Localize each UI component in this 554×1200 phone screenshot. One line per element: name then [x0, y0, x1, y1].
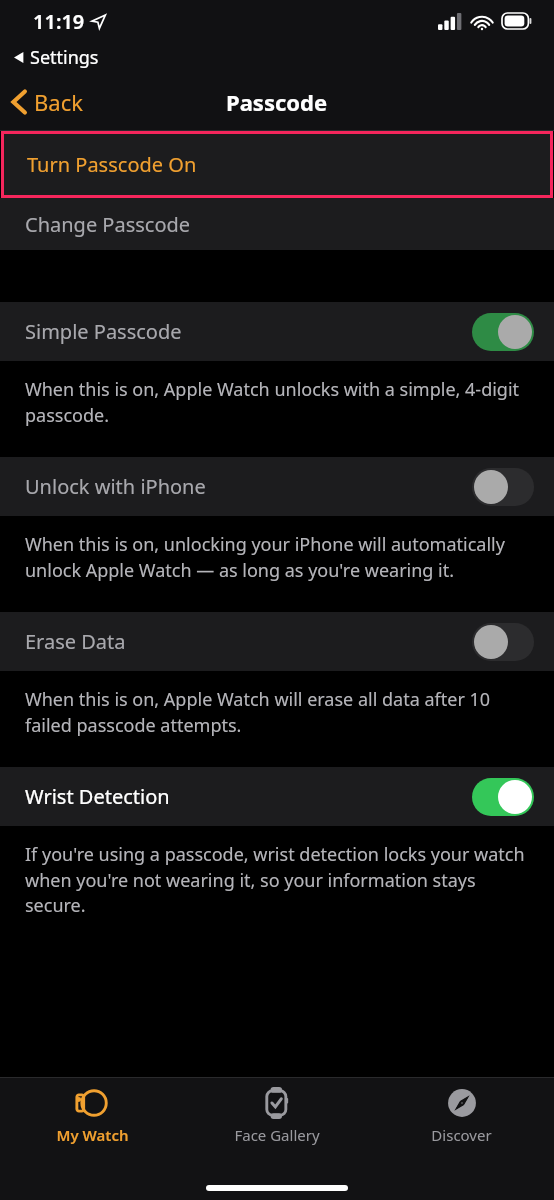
staticText: Wrist Detection: [25, 783, 170, 810]
button[interactable]: Settings: [0, 42, 554, 72]
button[interactable]: My Watch: [0, 1078, 184, 1154]
button[interactable]: Turn Passcode On: [4, 134, 550, 195]
staticText: Simple Passcode: [25, 318, 182, 345]
button[interactable]: Back: [0, 74, 95, 130]
button[interactable]: Wrist Detection: [0, 767, 554, 826]
staticText: Passcode: [226, 87, 328, 117]
staticText: Turn Passcode On: [27, 151, 197, 178]
staticText: Settings: [30, 45, 99, 70]
staticText: Unlock with iPhone: [25, 473, 206, 500]
other: My Watch: [75, 1086, 109, 1120]
button[interactable]: Simple Passcode: [0, 302, 554, 361]
button[interactable]: Unlock with iPhone: [0, 457, 554, 516]
staticText: Back: [34, 87, 83, 117]
staticText: Change Passcode: [25, 211, 191, 238]
staticText: My Watch: [56, 1125, 129, 1145]
staticText: If you're using a passcode, wrist detect…: [25, 842, 528, 917]
button[interactable]: Toggle: [472, 468, 534, 506]
staticText: When this is on, unlocking your iPhone w…: [25, 532, 528, 582]
staticText: Erase Data: [25, 628, 126, 655]
staticText: When this is on, Apple Watch unlocks wit…: [25, 377, 528, 427]
button[interactable]: Discover: [369, 1078, 554, 1154]
button[interactable]: Toggle: [472, 623, 534, 661]
staticText: Discover: [431, 1125, 492, 1145]
other: Discover: [445, 1086, 479, 1120]
button[interactable]: Face Gallery: [184, 1078, 369, 1154]
button[interactable]: Change Passcode: [0, 198, 554, 250]
staticText: When this is on, Apple Watch will erase …: [25, 687, 528, 737]
staticText: 11:19: [33, 8, 85, 35]
staticText: Face Gallery: [234, 1125, 320, 1145]
button[interactable]: Toggle: [472, 778, 534, 816]
button[interactable]: Erase Data: [0, 612, 554, 671]
button[interactable]: Toggle: [472, 313, 534, 351]
other: Face Gallery: [260, 1086, 294, 1120]
